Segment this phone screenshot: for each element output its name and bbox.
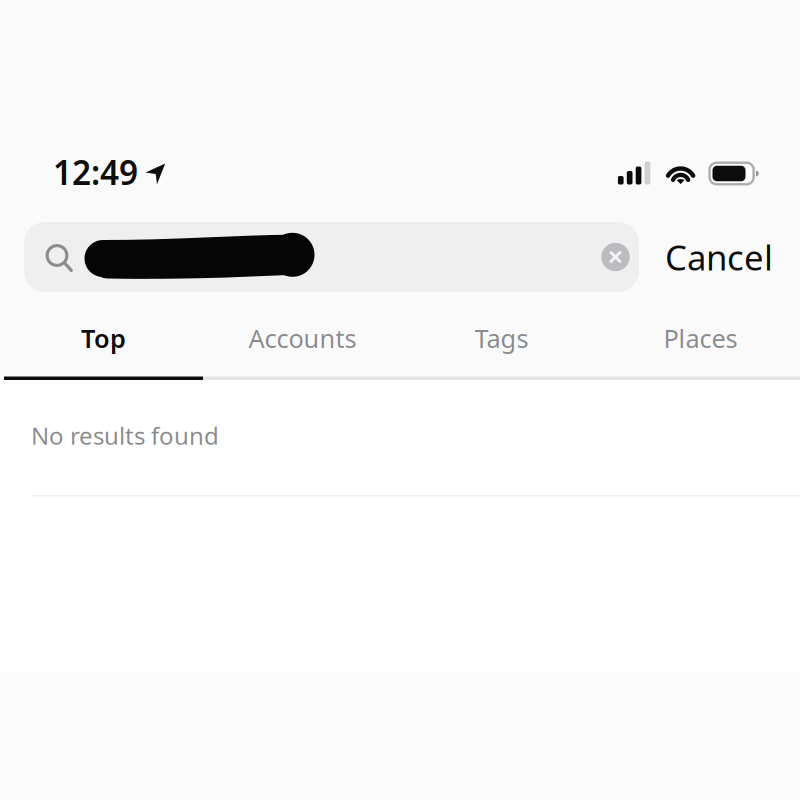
staticText: No results found (31, 420, 219, 451)
button[interactable]: Cancel (639, 222, 785, 292)
staticText: Accounts (248, 321, 356, 355)
button[interactable]: Tags (402, 300, 601, 380)
button[interactable]: Places (601, 300, 800, 380)
button[interactable]: Clear text (601, 242, 639, 271)
staticText: Top (81, 321, 126, 355)
staticText: Cancel (665, 234, 773, 280)
staticText: Tags (474, 321, 528, 355)
staticText: Places (663, 321, 737, 355)
button[interactable]: Top (4, 300, 203, 380)
button[interactable]: Accounts (203, 300, 402, 380)
staticText: 12:49 (53, 150, 138, 194)
